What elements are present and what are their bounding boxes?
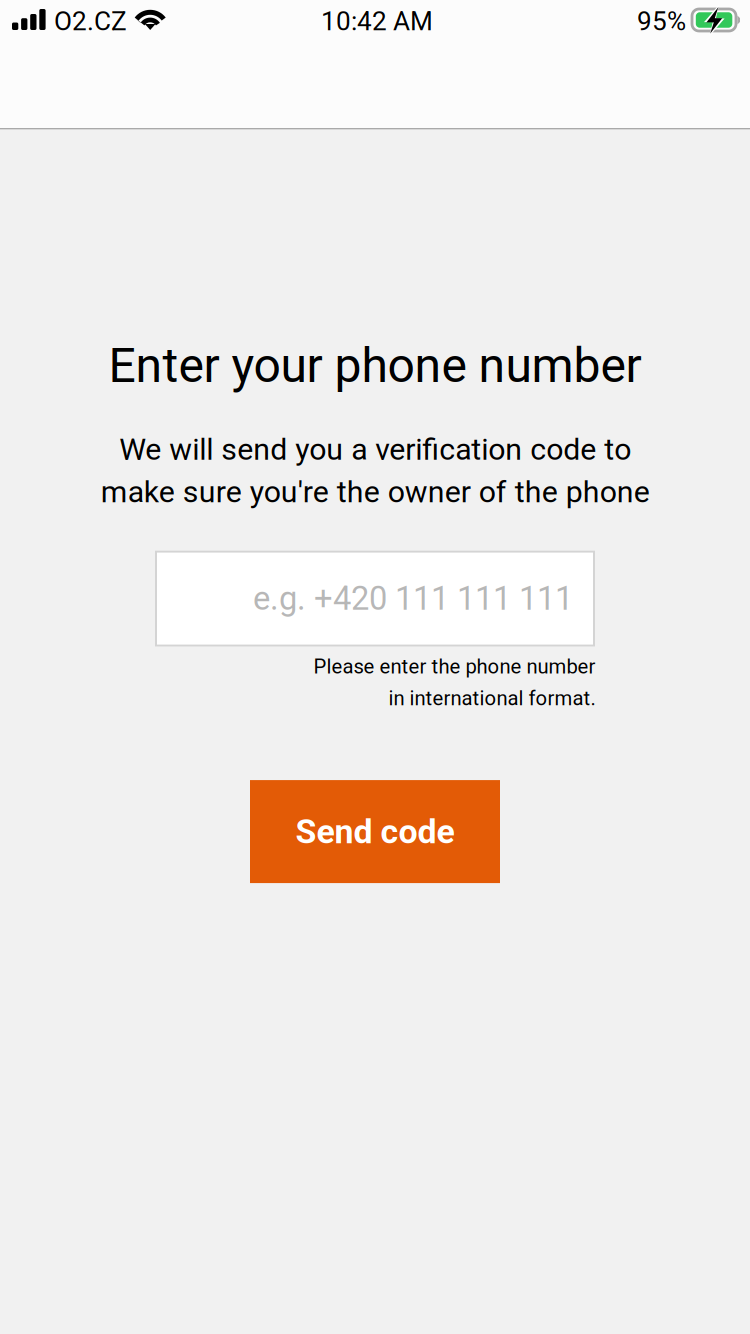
staticText: O2.CZ [54,6,127,37]
button[interactable]: Send code [250,780,500,883]
staticText: Please enter the phone number in interna… [313,655,595,710]
staticText: e.g. +420 111 111 111 [253,579,573,618]
staticText: 95% [637,6,686,37]
staticText: Enter your phone number [108,337,641,394]
staticText: Send code [295,812,454,851]
staticText: 10:42 AM [321,6,433,37]
staticText: We will send you a verification code to … [100,432,649,509]
